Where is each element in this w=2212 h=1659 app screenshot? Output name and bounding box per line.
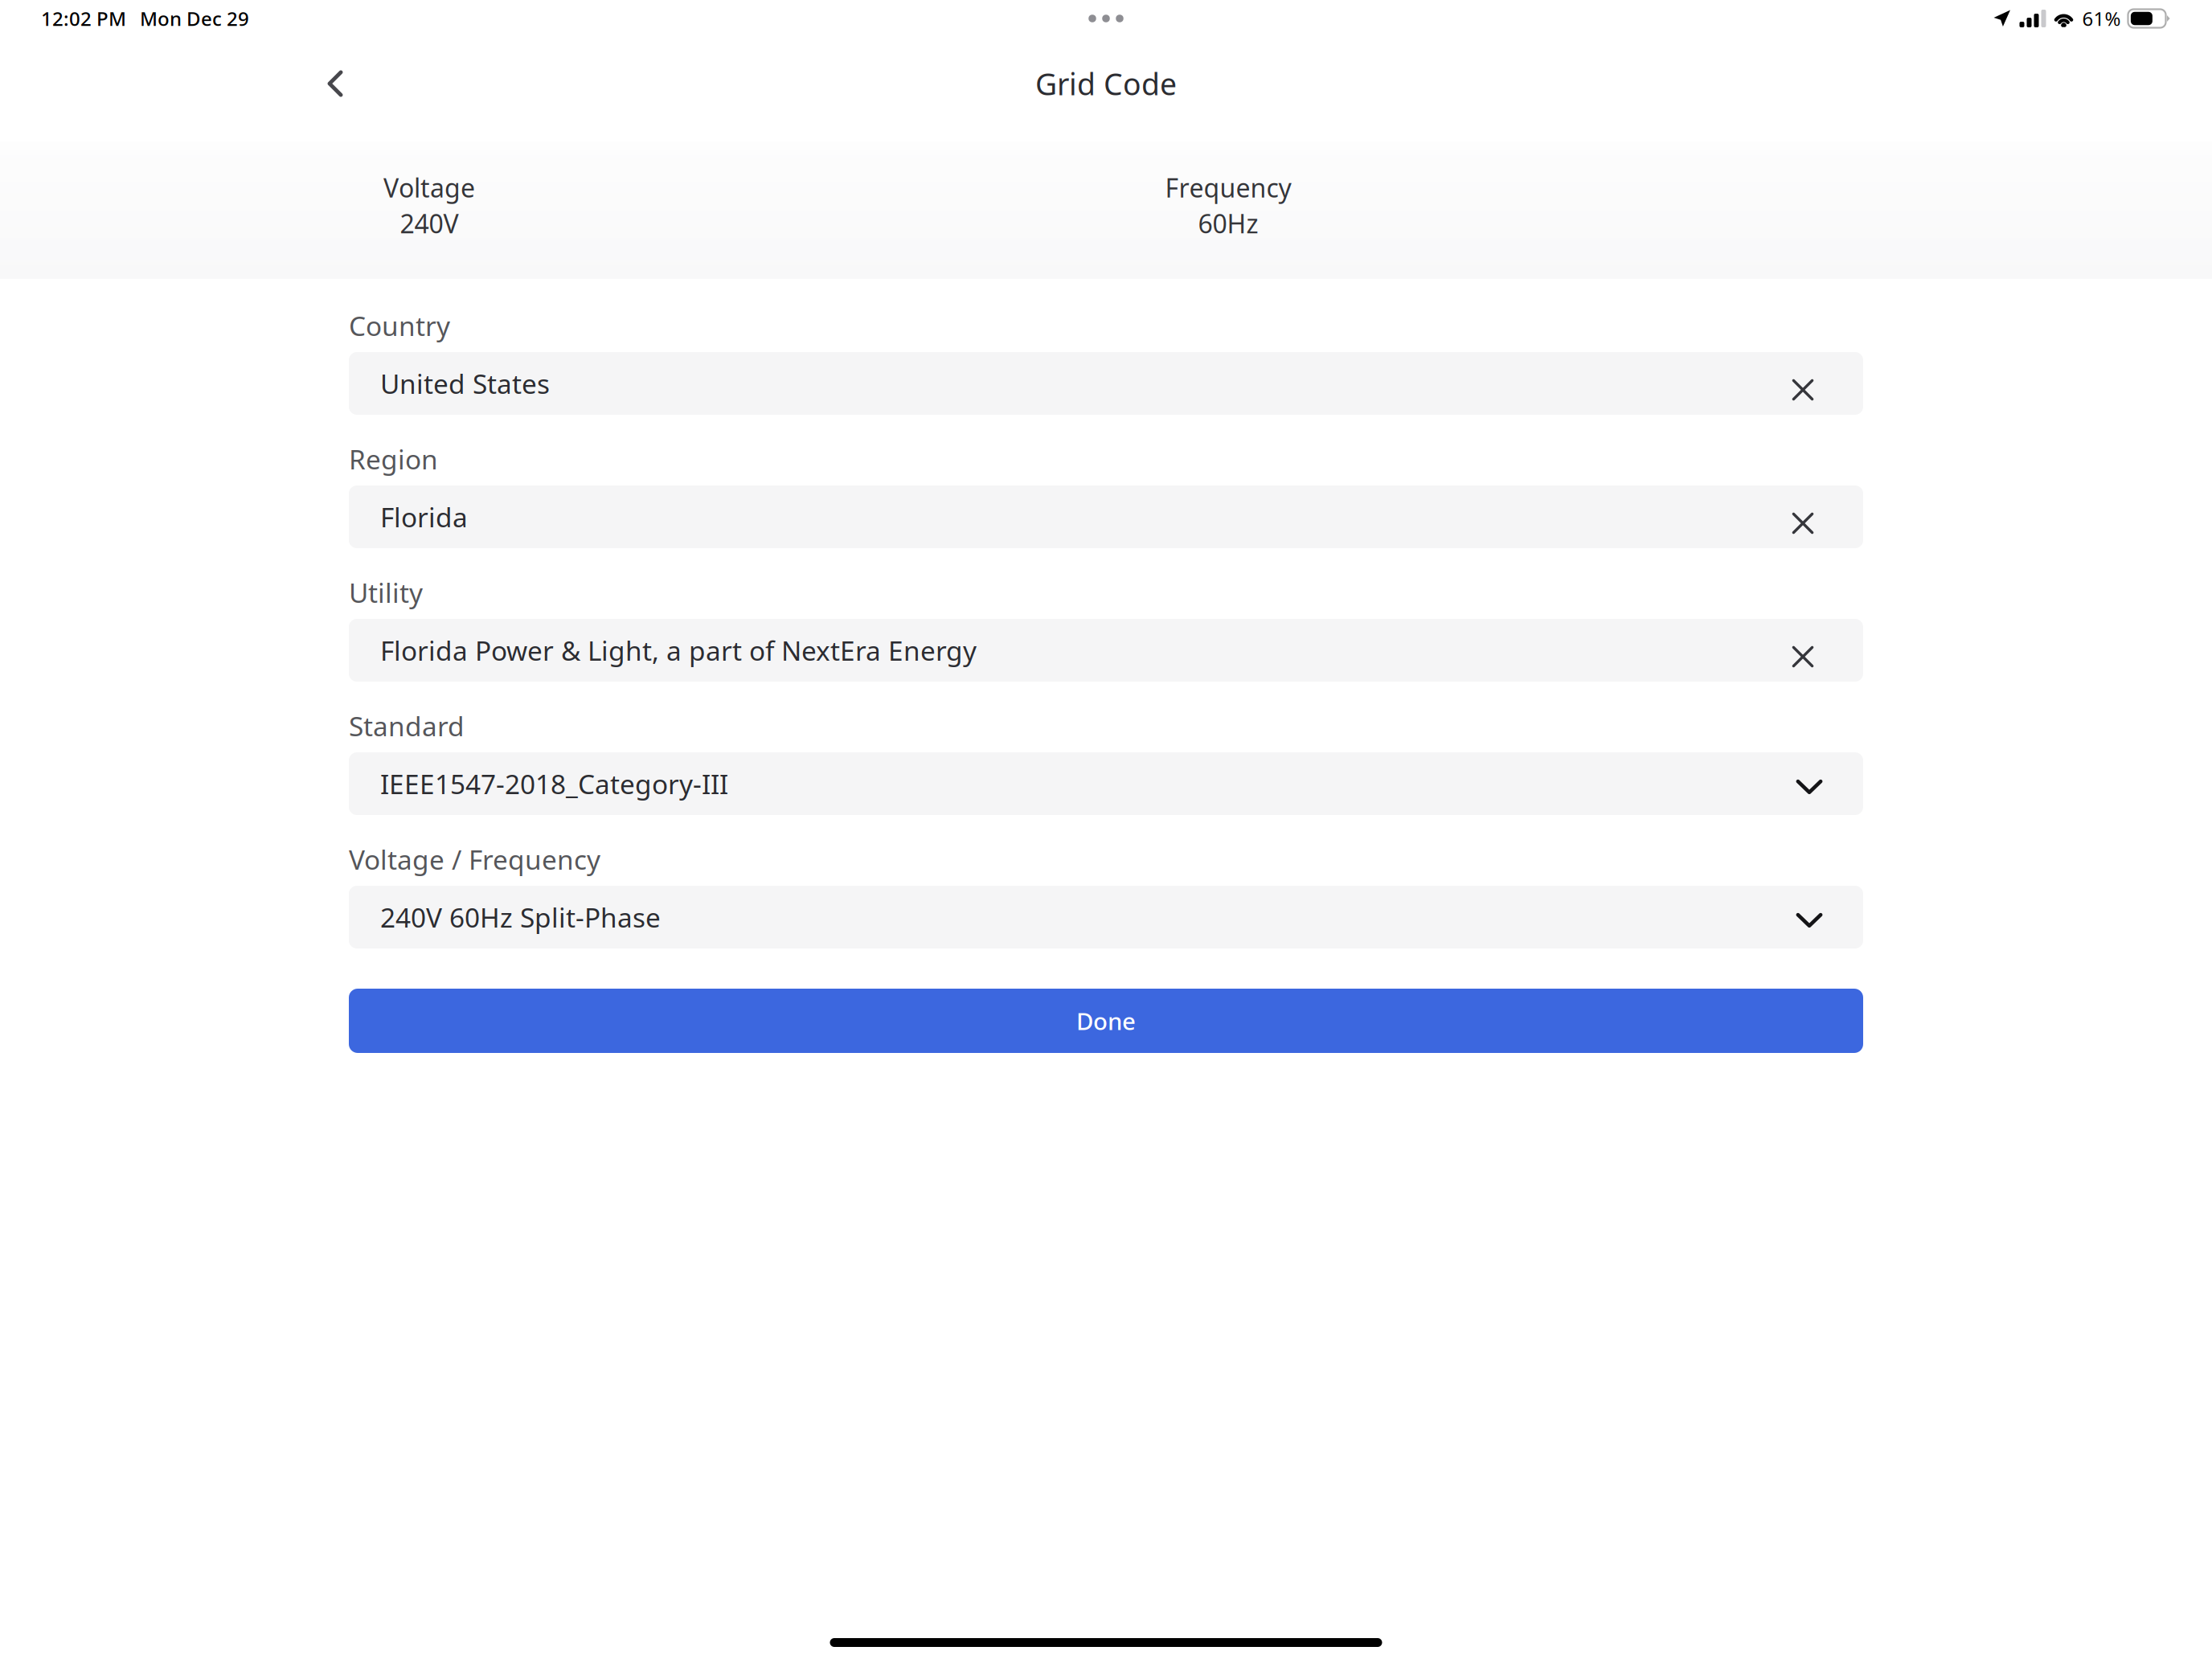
button[interactable]: 240V 60Hz Split-Phase xyxy=(349,886,1863,948)
staticText: Voltage xyxy=(383,170,475,205)
staticText: Utility xyxy=(349,575,423,610)
staticText: Grid Code xyxy=(1035,64,1177,104)
button[interactable]: Done xyxy=(349,989,1863,1053)
staticText: Florida Power & Light, a part of NextEra… xyxy=(380,632,977,668)
staticText: Country xyxy=(349,308,450,343)
staticText: Region xyxy=(349,441,438,477)
button[interactable]: United States xyxy=(349,352,1863,415)
button[interactable]: Florida xyxy=(349,485,1863,548)
staticText: Mon Dec 29 xyxy=(140,6,249,31)
staticText: IEEE1547-2018_Category-III xyxy=(380,766,728,802)
staticText: United States xyxy=(380,366,550,401)
button[interactable]: IEEE1547-2018_Category-III xyxy=(349,752,1863,815)
staticText: 240V 60Hz Split-Phase xyxy=(380,899,661,935)
staticText: 60Hz xyxy=(1198,206,1258,240)
staticText: Voltage / Frequency xyxy=(349,841,600,877)
staticText: Standard xyxy=(349,708,465,744)
button[interactable]: Back xyxy=(305,54,365,113)
staticText: Florida xyxy=(380,499,468,535)
staticText: 61% xyxy=(2082,6,2121,31)
button[interactable]: Florida Power & Light, a part of NextEra… xyxy=(349,619,1863,682)
staticText: 12:02 PM xyxy=(41,6,126,31)
staticText: Frequency xyxy=(1165,170,1291,205)
staticText: 240V xyxy=(400,206,459,240)
staticText: Done xyxy=(1076,1005,1136,1036)
